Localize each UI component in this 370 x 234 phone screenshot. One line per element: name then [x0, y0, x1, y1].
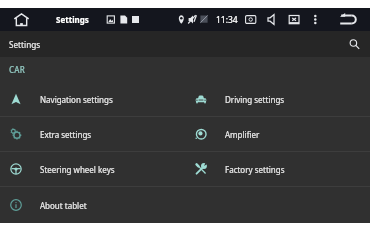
button[interactable]: Factory settings [185, 152, 370, 186]
staticText: Extra settings [40, 129, 92, 140]
button[interactable]: Home [9, 8, 33, 31]
staticText: Settings [9, 39, 41, 50]
staticText: Amplifier [225, 129, 260, 140]
button[interactable]: Amplifier [185, 117, 370, 151]
button[interactable]: About tablet [0, 187, 185, 223]
staticText: CAR [9, 64, 25, 75]
staticText: 11:34 [216, 14, 238, 26]
button[interactable]: Driving settings [185, 82, 370, 116]
staticText: Navigation settings [40, 94, 113, 105]
button[interactable]: Extra settings [0, 117, 185, 151]
button[interactable]: Back [339, 11, 357, 29]
staticText: About tablet [40, 200, 87, 211]
staticText: Steering wheel keys [40, 164, 115, 175]
button[interactable]: More options [306, 11, 324, 29]
staticText: Factory settings [225, 164, 285, 175]
button[interactable]: Navigation settings [0, 82, 185, 116]
staticText: Settings [56, 14, 89, 25]
button[interactable]: Search [344, 34, 364, 54]
staticText: Driving settings [225, 94, 285, 105]
button[interactable]: Steering wheel keys [0, 152, 185, 186]
